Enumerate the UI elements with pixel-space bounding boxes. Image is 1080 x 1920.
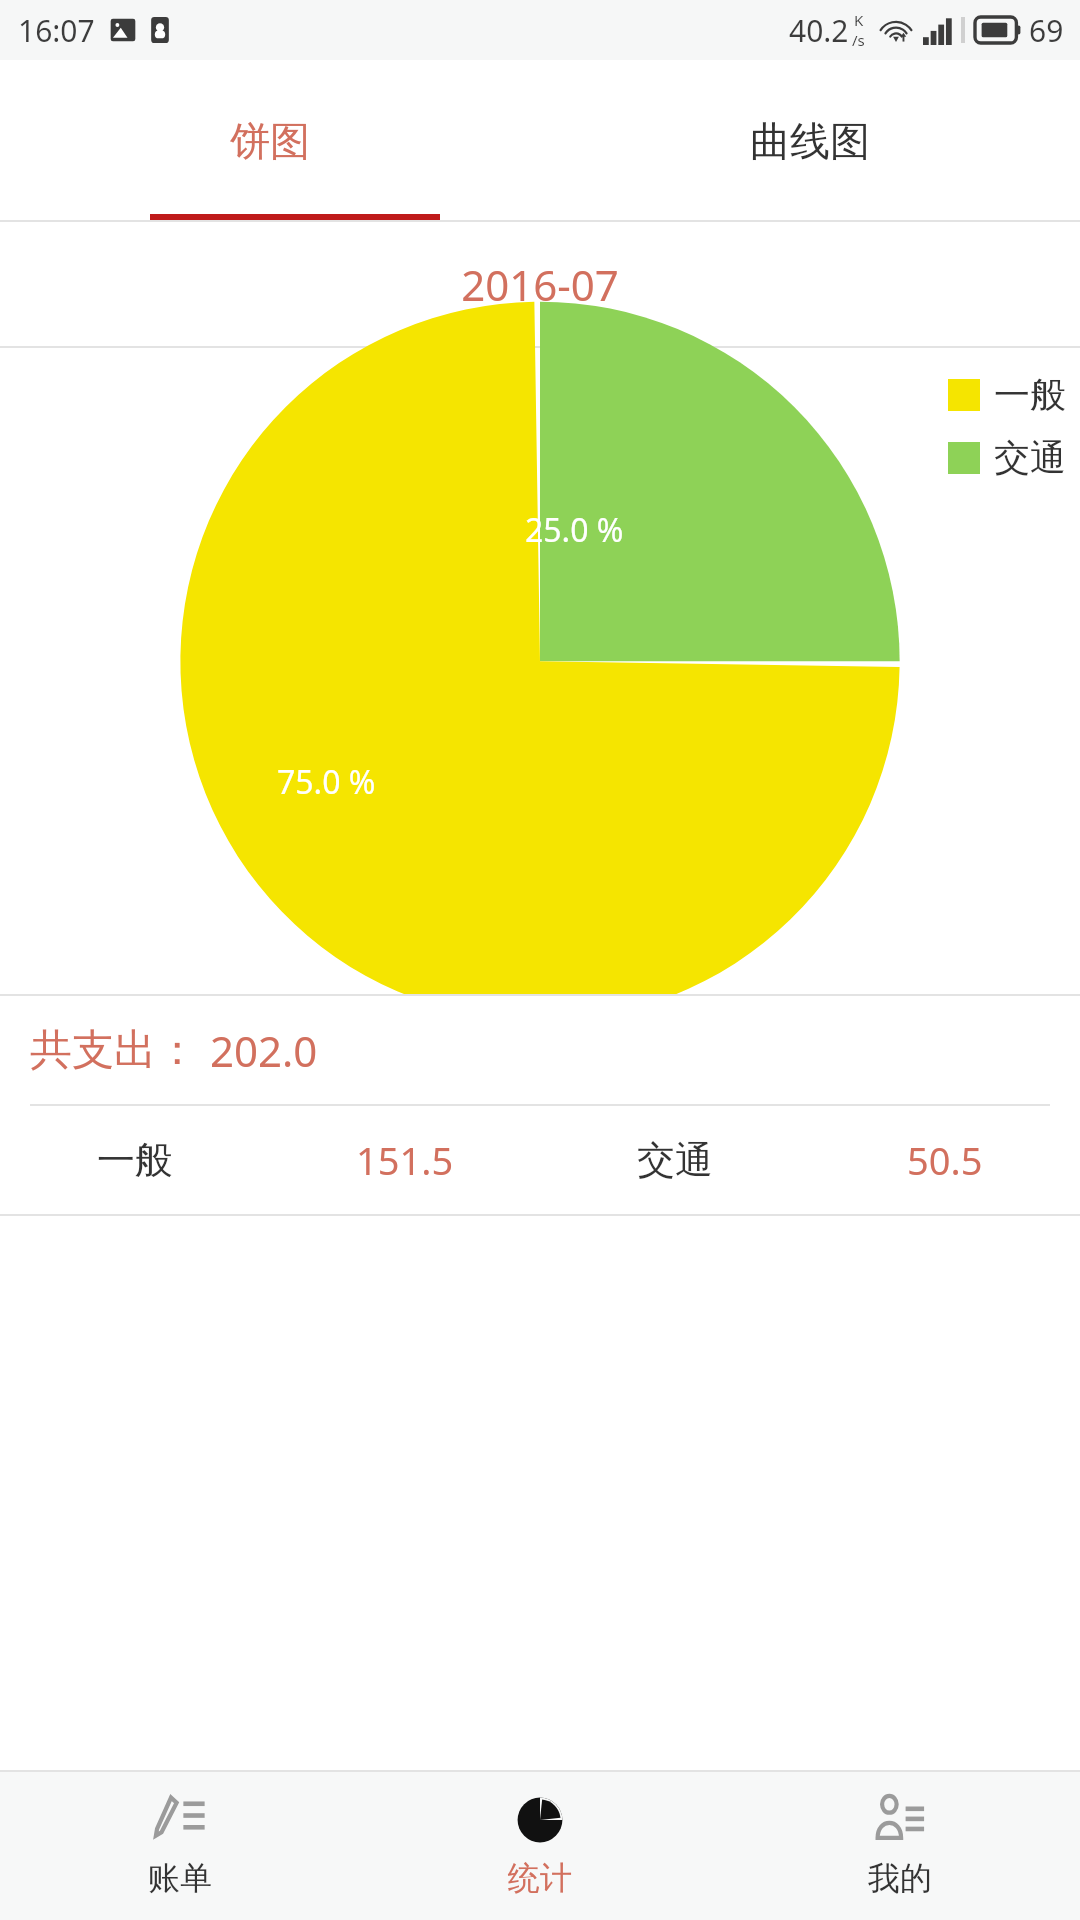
staticText: 75.0 % <box>277 760 376 804</box>
staticText: K <box>854 10 864 30</box>
other: 我的 <box>872 1792 928 1848</box>
other: 账单 <box>152 1792 208 1848</box>
button[interactable]: 我的 <box>720 1772 1080 1920</box>
staticText: 交通 <box>637 1136 713 1184</box>
staticText: 2016-07 <box>461 256 619 313</box>
staticText: 共支出： <box>30 1024 198 1077</box>
button[interactable]: 一般 <box>0 1106 1080 1214</box>
staticText: 一般 <box>97 1136 173 1184</box>
staticText: 曲线图 <box>750 116 870 166</box>
staticText: 交通 <box>994 435 1066 480</box>
button[interactable]: 账单 <box>0 1772 360 1920</box>
staticText: 账单 <box>148 1858 212 1898</box>
staticText: 151.5 <box>356 1134 454 1186</box>
button[interactable]: 饼图 <box>0 60 540 222</box>
staticText: 饼图 <box>230 116 310 166</box>
staticText: /s <box>852 30 865 50</box>
staticText: 40.2 <box>789 10 849 51</box>
button[interactable]: 统计 <box>360 1772 720 1920</box>
staticText: 25.0 % <box>525 508 624 552</box>
staticText: 统计 <box>508 1858 572 1898</box>
staticText: 16:07 <box>18 10 95 51</box>
button[interactable]: 2016-07 <box>0 222 1080 346</box>
staticText: 202.0 <box>210 1022 318 1079</box>
staticText: 我的 <box>868 1858 932 1898</box>
staticText: 50.5 <box>907 1134 983 1186</box>
staticText: 69 <box>1029 10 1064 51</box>
staticText: 一般 <box>994 372 1066 417</box>
other: 统计 <box>512 1792 568 1848</box>
button[interactable]: 曲线图 <box>540 60 1080 222</box>
